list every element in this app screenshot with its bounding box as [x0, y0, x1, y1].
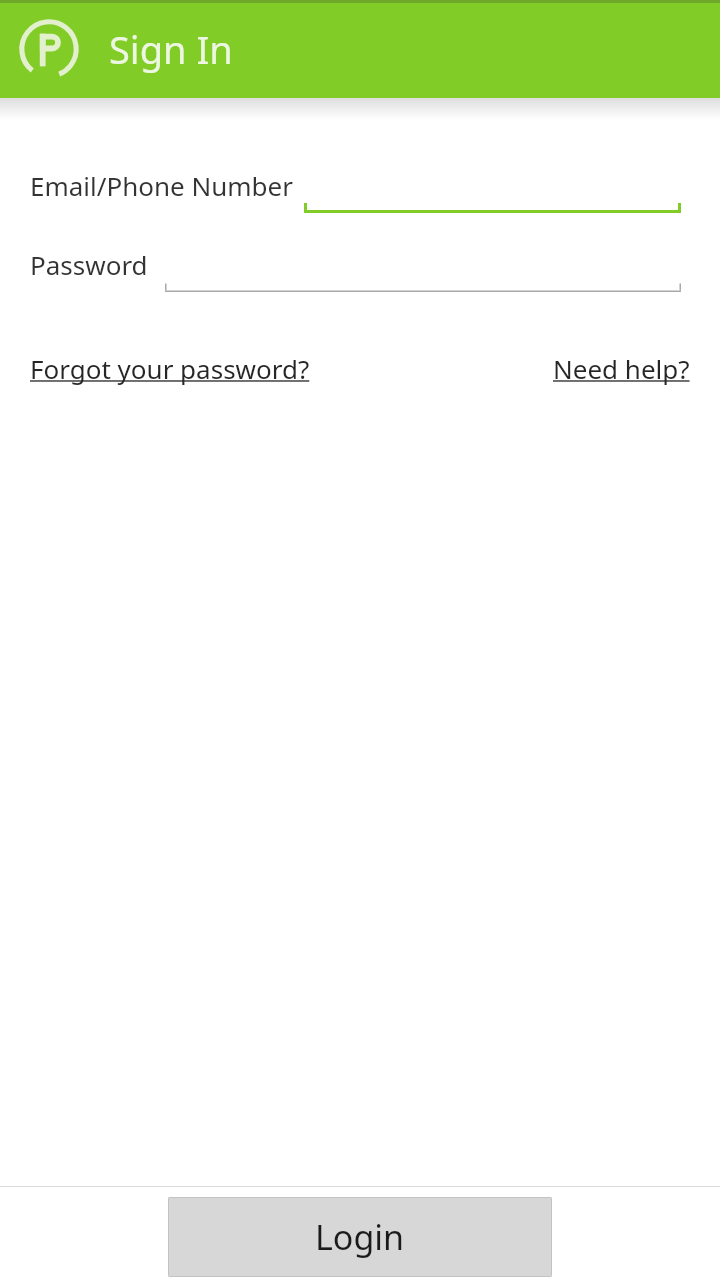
button[interactable]: Email/Phone Number [0, 168, 720, 220]
staticText: Email/Phone Number [30, 168, 293, 203]
button[interactable]: Need help? [553, 351, 690, 386]
staticText: Sign In [109, 23, 233, 75]
staticText: Forgot your password? [30, 351, 310, 386]
button[interactable]: Forgot your password? [30, 351, 310, 386]
button[interactable]: Login [168, 1197, 552, 1277]
staticText: Need help? [553, 351, 690, 386]
button[interactable]: Password [0, 247, 720, 299]
staticText: Password [30, 247, 148, 282]
staticText: Login [315, 1214, 405, 1260]
